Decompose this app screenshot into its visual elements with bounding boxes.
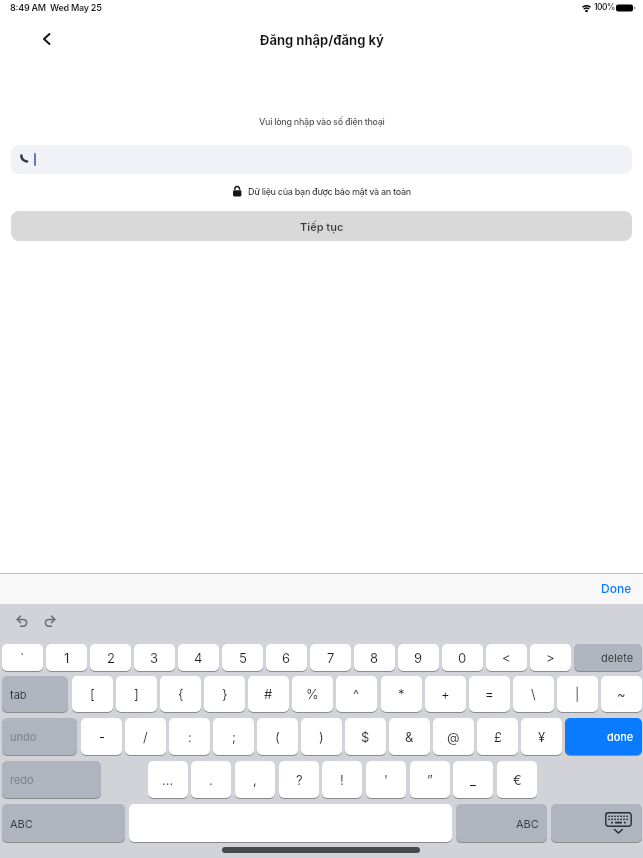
staticText: @ xyxy=(447,729,460,745)
staticText: tab xyxy=(10,688,27,701)
button[interactable]: ] xyxy=(116,676,157,712)
button[interactable]: + xyxy=(425,676,466,712)
button[interactable]: < xyxy=(486,644,527,671)
button[interactable]: 3 xyxy=(134,644,175,671)
button[interactable]: . xyxy=(191,761,231,798)
staticText: Tiếp tục xyxy=(300,220,344,233)
button[interactable]: Tiếp tục xyxy=(11,211,632,241)
staticText: $ xyxy=(361,729,370,745)
staticText: ¥ xyxy=(538,729,546,745)
staticText: Vui lòng nhập vào số điện thoại xyxy=(259,116,385,127)
button[interactable]: 4 xyxy=(178,644,219,671)
button[interactable]: tab xyxy=(2,676,68,712)
staticText: ^ xyxy=(353,686,360,702)
button[interactable]: redo xyxy=(2,761,101,798)
button[interactable]: _ xyxy=(453,761,493,798)
staticText: 100% xyxy=(594,2,615,12)
button[interactable]: $ xyxy=(345,718,386,755)
button[interactable]: } xyxy=(204,676,245,712)
button[interactable]: \ xyxy=(513,676,554,712)
button[interactable]: - xyxy=(81,718,122,755)
button[interactable]: # xyxy=(248,676,289,712)
staticText: 8 xyxy=(370,650,379,666)
button[interactable]: / xyxy=(125,718,166,755)
staticText: ) xyxy=(319,729,324,745)
staticText: € xyxy=(513,772,522,788)
button[interactable]: 7 xyxy=(310,644,351,671)
button[interactable] xyxy=(11,145,632,174)
staticText: \ xyxy=(531,686,536,702)
button[interactable]: ! xyxy=(322,761,362,798)
staticText: : xyxy=(188,729,192,745)
button[interactable]: , xyxy=(235,761,275,798)
staticText: Wed May 25 xyxy=(50,2,102,13)
staticText: ; xyxy=(232,729,236,745)
staticText: 4 xyxy=(194,650,203,666)
button[interactable]: { xyxy=(160,676,201,712)
staticText: 1 xyxy=(64,650,70,666)
staticText: - xyxy=(99,729,105,745)
button[interactable]: undo xyxy=(2,718,77,755)
button[interactable]: 6 xyxy=(266,644,307,671)
button[interactable]: ... xyxy=(148,761,188,798)
staticText: 6 xyxy=(282,650,291,666)
staticText: Done xyxy=(601,581,632,596)
button[interactable]: & xyxy=(389,718,430,755)
button[interactable]: £ xyxy=(477,718,518,755)
button[interactable]: ¥ xyxy=(521,718,562,755)
button[interactable]: ; xyxy=(213,718,254,755)
staticText: % xyxy=(306,686,319,702)
staticText: delete xyxy=(601,651,634,664)
button[interactable]: ) xyxy=(301,718,342,755)
button[interactable]: [ xyxy=(72,676,113,712)
staticText: ~ xyxy=(617,686,626,702)
button[interactable]: ` xyxy=(2,644,43,671)
button[interactable]: ? xyxy=(279,761,319,798)
staticText: & xyxy=(405,729,414,745)
staticText: ABC xyxy=(516,817,539,830)
staticText: 7 xyxy=(327,650,335,666)
button[interactable]: ^ xyxy=(336,676,377,712)
staticText: } xyxy=(222,686,228,702)
staticText: 2 xyxy=(107,650,115,666)
staticText: [ xyxy=(90,686,95,702)
button[interactable] xyxy=(551,804,642,842)
button[interactable]: ABC xyxy=(2,804,125,842)
button[interactable]: done xyxy=(565,718,642,755)
button[interactable] xyxy=(36,28,58,50)
button[interactable]: 9 xyxy=(398,644,439,671)
staticText: redo xyxy=(10,773,34,786)
button[interactable]: | xyxy=(557,676,598,712)
button[interactable]: ~ xyxy=(601,676,642,712)
staticText: ... xyxy=(162,772,174,788)
button[interactable]: Done xyxy=(589,573,643,604)
staticText: undo xyxy=(10,730,37,743)
button[interactable]: 2 xyxy=(90,644,131,671)
staticText: | xyxy=(575,686,580,702)
button[interactable]: 0 xyxy=(442,644,483,671)
staticText: £ xyxy=(494,729,502,745)
button[interactable]: ' xyxy=(366,761,406,798)
button[interactable]: % xyxy=(292,676,333,712)
staticText: / xyxy=(143,729,148,745)
staticText: + xyxy=(441,686,450,702)
button[interactable]: = xyxy=(469,676,510,712)
staticText: ( xyxy=(275,729,280,745)
button[interactable]: delete xyxy=(574,644,642,671)
button[interactable]: 1 xyxy=(46,644,87,671)
button[interactable]: ( xyxy=(257,718,298,755)
button[interactable]: * xyxy=(381,676,422,712)
button[interactable]: € xyxy=(497,761,537,798)
button[interactable]: > xyxy=(530,644,571,671)
button[interactable]: ” xyxy=(410,761,450,798)
button[interactable]: @ xyxy=(433,718,474,755)
staticText: ' xyxy=(384,772,388,788)
button[interactable]: 8 xyxy=(354,644,395,671)
button[interactable]: 5 xyxy=(222,644,263,671)
staticText: ] xyxy=(134,686,139,702)
button[interactable]: : xyxy=(169,718,210,755)
staticText: ? xyxy=(296,772,303,788)
button[interactable]: ABC xyxy=(456,804,547,842)
staticText: 5 xyxy=(239,650,247,666)
